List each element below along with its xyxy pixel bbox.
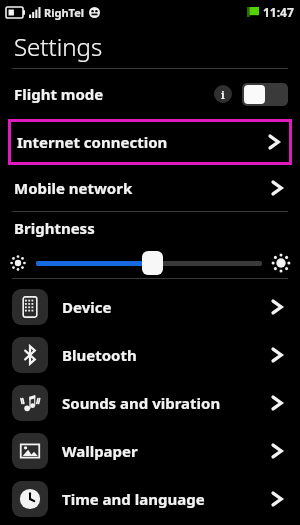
- button[interactable]: Flight mode: [0, 69, 300, 119]
- button[interactable]: Brightness slider: [36, 250, 262, 276]
- button[interactable]: Sounds and vibration: [0, 379, 300, 427]
- staticText: Time and language: [62, 489, 205, 509]
- button[interactable]: Mobile network: [0, 165, 300, 211]
- staticText: Device: [62, 297, 112, 317]
- staticText: Internet connection: [17, 132, 168, 152]
- button[interactable]: Internet connection: [11, 122, 289, 162]
- staticText: Settings: [14, 30, 103, 63]
- staticText: RighTel: [44, 5, 85, 20]
- button[interactable]: Bluetooth: [0, 331, 300, 379]
- button[interactable]: Info about flight mode: [214, 85, 232, 103]
- staticText: Sounds and vibration: [62, 393, 221, 413]
- staticText: i: [221, 87, 225, 102]
- staticText: Brightness: [14, 218, 95, 238]
- staticText: Flight mode: [14, 84, 104, 104]
- staticText: Mobile network: [14, 178, 133, 198]
- staticText: Wallpaper: [62, 441, 138, 461]
- staticText: 11:47: [263, 4, 294, 20]
- button[interactable]: Time and language: [0, 475, 300, 523]
- button[interactable]: Device: [0, 283, 300, 331]
- staticText: Bluetooth: [62, 345, 137, 365]
- button[interactable]: Wallpaper: [0, 427, 300, 475]
- button[interactable]: Flight mode toggle, off: [242, 83, 288, 106]
